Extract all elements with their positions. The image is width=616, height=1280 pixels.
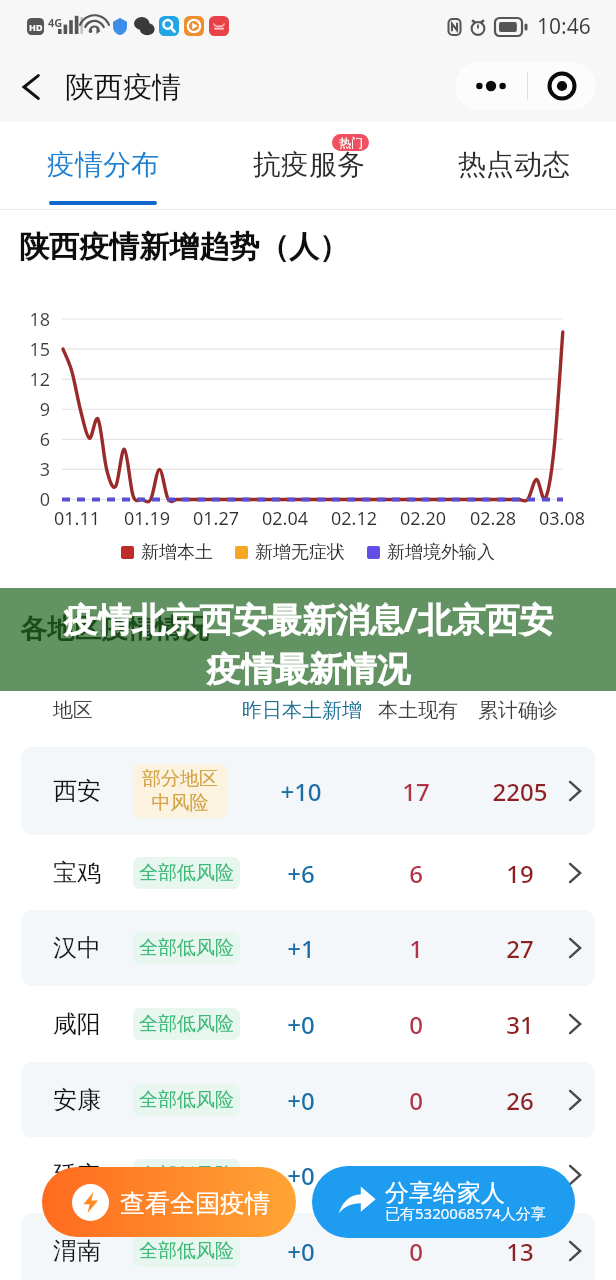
staticText: 查看全国疫情 [120,1188,270,1219]
button[interactable]: 西安 [21,747,595,835]
staticText: 全部低风险 [139,1012,234,1036]
staticText: 19 [475,857,565,890]
button[interactable]: 疫情分布 [0,122,206,210]
staticText: 10:46 [537,12,591,41]
staticText: 咸阳 [53,1009,101,1039]
staticText: 疫情分布 [47,147,159,182]
button[interactable]: 抗疫服务 [206,122,411,210]
staticText: 02.28 [463,506,523,531]
staticText: 26 [475,1084,565,1117]
staticText: 01.11 [47,506,107,531]
button[interactable]: 疫情北京西安最新消息/北京西安 疫情最新情况 [0,588,616,691]
staticText: 西安 [53,776,101,806]
staticText: 0 [12,487,50,512]
button[interactable]: 汉中 [21,910,595,986]
staticText: 汉中 [53,933,101,963]
staticText: 3 [12,457,50,482]
staticText: 宝鸡 [53,858,101,888]
staticText: 01.27 [186,506,246,531]
staticText: 新增境外输入 [387,541,495,564]
staticText: 抗疫服务 [253,147,365,182]
button[interactable]: 安康 [21,1062,595,1138]
button[interactable]: 咸阳 [21,986,595,1062]
staticText: 2205 [475,775,565,808]
staticText: 03.08 [532,506,592,531]
staticText: 6 [371,857,461,890]
button[interactable]: 延安 [21,1137,595,1213]
button[interactable]: 渭南 [21,1213,595,1280]
staticText: 6 [12,427,50,452]
staticText: 部分地区 中风险 [142,767,218,815]
staticText: 热点动态 [458,147,570,182]
staticText: 累计确诊 [478,698,558,723]
staticText: 0 [371,1235,461,1268]
staticText: +0 [256,1008,346,1041]
staticText: +1 [256,932,346,965]
staticText: 0 [371,1008,461,1041]
staticText: 延安 [53,1160,101,1190]
staticText: 02.04 [255,506,315,531]
staticText: 全部低风险 [139,861,234,885]
staticText: 18 [12,307,50,332]
staticText: 0 [371,1159,461,1192]
staticText: 全部低风险 [139,1088,234,1112]
staticText: 昨日本土新增 [242,698,362,723]
button[interactable]: 宝鸡 [21,835,595,911]
staticText: 0 [371,1084,461,1117]
staticText: 13 [475,1235,565,1268]
staticText: 陕西疫情新增趋势（人） [19,228,349,266]
staticText: 全部低风险 [139,936,234,960]
staticText: 02.20 [393,506,453,531]
button[interactable]: More options [455,62,527,110]
button[interactable]: Close [528,62,596,110]
button[interactable]: 热点动态 [411,122,616,210]
staticText: +10 [256,775,346,808]
staticText: 疫情北京西安最新消息/北京西安 疫情最新情况 [63,596,554,691]
button[interactable]: 查看全国疫情 [42,1167,296,1237]
staticText: 新增本土 [141,541,213,564]
staticText: 新增无症状 [255,541,345,564]
staticText: 各地区疫情情况 [20,612,209,646]
staticText: 4G [48,15,63,30]
staticText: 31 [475,1008,565,1041]
staticText: 安康 [53,1085,101,1115]
staticText: 全部低风险 [139,1163,234,1187]
staticText: 17 [371,775,461,808]
staticText: 1 [371,932,461,965]
staticText: 9 [12,397,50,422]
staticText: 21 [475,1159,565,1192]
button[interactable]: 分享给家人 [312,1166,575,1238]
staticText: 地区 [53,698,93,723]
staticText: 分享给家人 [385,1178,505,1208]
staticText: +6 [256,857,346,890]
staticText: +0 [256,1235,346,1268]
staticText: 渭南 [53,1236,101,1266]
staticText: 12 [12,367,50,392]
staticText: 热门 [339,135,363,150]
staticText: 27 [475,932,565,965]
button[interactable]: Back [9,65,53,109]
staticText: 已有5320068574人分享 [385,1203,546,1223]
staticText: 01.19 [117,506,177,531]
staticText: +0 [256,1084,346,1117]
staticText: 15 [12,337,50,362]
staticText: 02.12 [324,506,384,531]
staticText: 全部低风险 [139,1239,234,1263]
staticText: 本土现有 [378,698,458,723]
staticText: HD [29,21,43,33]
staticText: 陕西疫情 [65,69,181,106]
staticText: +0 [256,1159,346,1192]
